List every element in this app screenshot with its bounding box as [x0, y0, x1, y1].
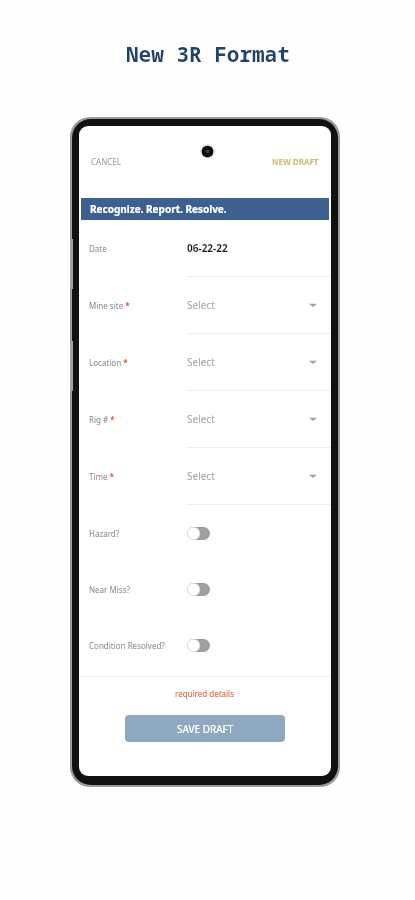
staticText: Select	[187, 412, 215, 426]
button[interactable]: Date	[79, 220, 331, 276]
button[interactable]: Rig # *	[79, 391, 331, 447]
staticText: New 3R Format	[126, 40, 290, 69]
staticText: SAVE DRAFT	[177, 722, 234, 736]
staticText: Select	[187, 298, 215, 312]
button[interactable]: SAVE DRAFT	[125, 715, 285, 742]
button[interactable]: Hazard?	[79, 505, 331, 561]
button[interactable]: Near Miss?	[79, 561, 331, 617]
staticText: Date	[89, 243, 107, 254]
staticText: Select	[187, 355, 215, 369]
staticText: NEW DRAFT	[272, 156, 319, 167]
button[interactable]: Condition Resolved?	[79, 617, 331, 673]
staticText: Hazard?	[89, 528, 120, 539]
staticText: CANCEL	[91, 156, 121, 167]
staticText: Time *	[89, 471, 114, 482]
button[interactable]: Mine site *	[79, 277, 331, 333]
staticText: Select	[187, 469, 215, 483]
staticText: Mine site *	[89, 300, 130, 311]
button[interactable]: NEW DRAFT	[268, 153, 323, 170]
staticText: 06-22-22	[187, 241, 228, 255]
staticText: Rig # *	[89, 414, 115, 425]
staticText: Condition Resolved?	[89, 640, 165, 651]
staticText: Near Miss?	[89, 584, 130, 595]
button[interactable]: Location *	[79, 334, 331, 390]
staticText: Location *	[89, 357, 128, 368]
button[interactable]: CANCEL	[87, 153, 125, 170]
staticText: Recognize. Report. Resolve.	[90, 202, 227, 216]
staticText: required details	[175, 688, 235, 699]
button[interactable]: Time *	[79, 448, 331, 504]
